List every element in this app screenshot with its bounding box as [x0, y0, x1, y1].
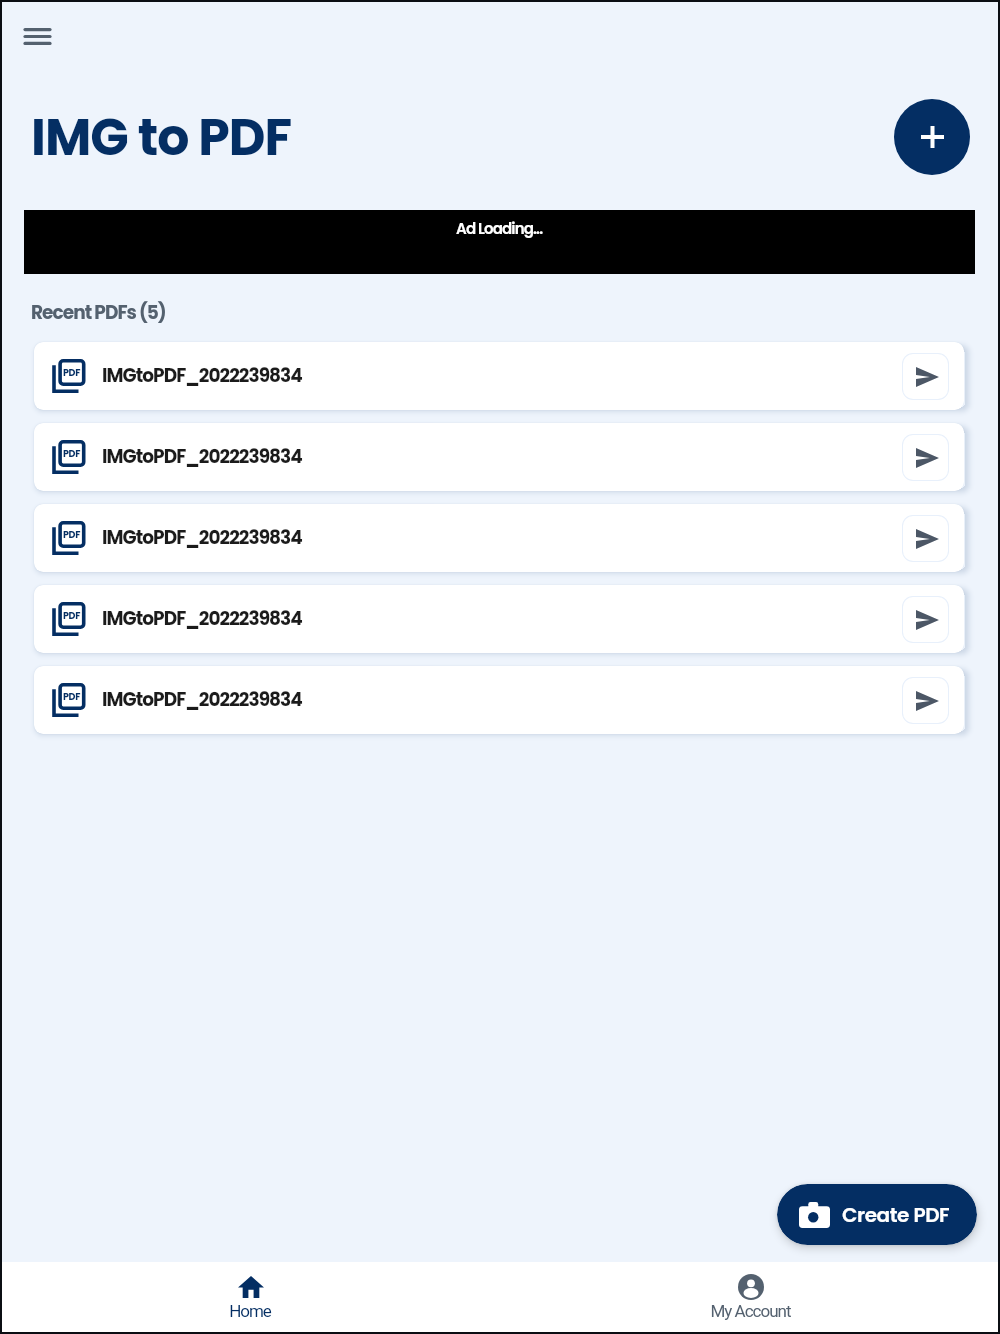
- button[interactable]: Share: [903, 597, 948, 642]
- staticText: PDF: [63, 447, 80, 460]
- staticText: Home: [229, 1301, 271, 1321]
- staticText: PDF: [63, 609, 80, 622]
- button[interactable]: Share: [903, 516, 948, 561]
- staticText: Ad Loading...: [456, 218, 543, 239]
- staticText: IMGtoPDF_2022239834: [102, 606, 302, 632]
- staticText: IMG to PDF: [31, 102, 292, 173]
- staticText: PDF: [63, 366, 80, 379]
- staticText: Create PDF: [842, 1201, 950, 1229]
- button[interactable]: PDF: [34, 423, 964, 491]
- button[interactable]: Add: [894, 99, 970, 175]
- staticText: PDF: [63, 528, 80, 541]
- staticText: IMGtoPDF_2022239834: [102, 525, 302, 551]
- button[interactable]: Create PDF: [777, 1184, 977, 1245]
- staticText: Recent PDFs (5): [31, 300, 166, 326]
- button[interactable]: PDF: [34, 342, 964, 410]
- button[interactable]: My Account: [500, 1262, 1000, 1332]
- staticText: IMGtoPDF_2022239834: [102, 363, 302, 389]
- button[interactable]: Menu: [16, 15, 58, 57]
- button[interactable]: PDF: [34, 504, 964, 572]
- button[interactable]: PDF: [34, 585, 964, 653]
- staticText: IMGtoPDF_2022239834: [102, 687, 302, 713]
- button[interactable]: Share: [903, 678, 948, 723]
- staticText: IMGtoPDF_2022239834: [102, 444, 302, 470]
- button[interactable]: PDF: [34, 666, 964, 734]
- button[interactable]: Share: [903, 435, 948, 480]
- staticText: PDF: [63, 690, 80, 703]
- button[interactable]: Home: [0, 1262, 500, 1332]
- button[interactable]: Share: [903, 354, 948, 399]
- staticText: My Account: [710, 1301, 791, 1321]
